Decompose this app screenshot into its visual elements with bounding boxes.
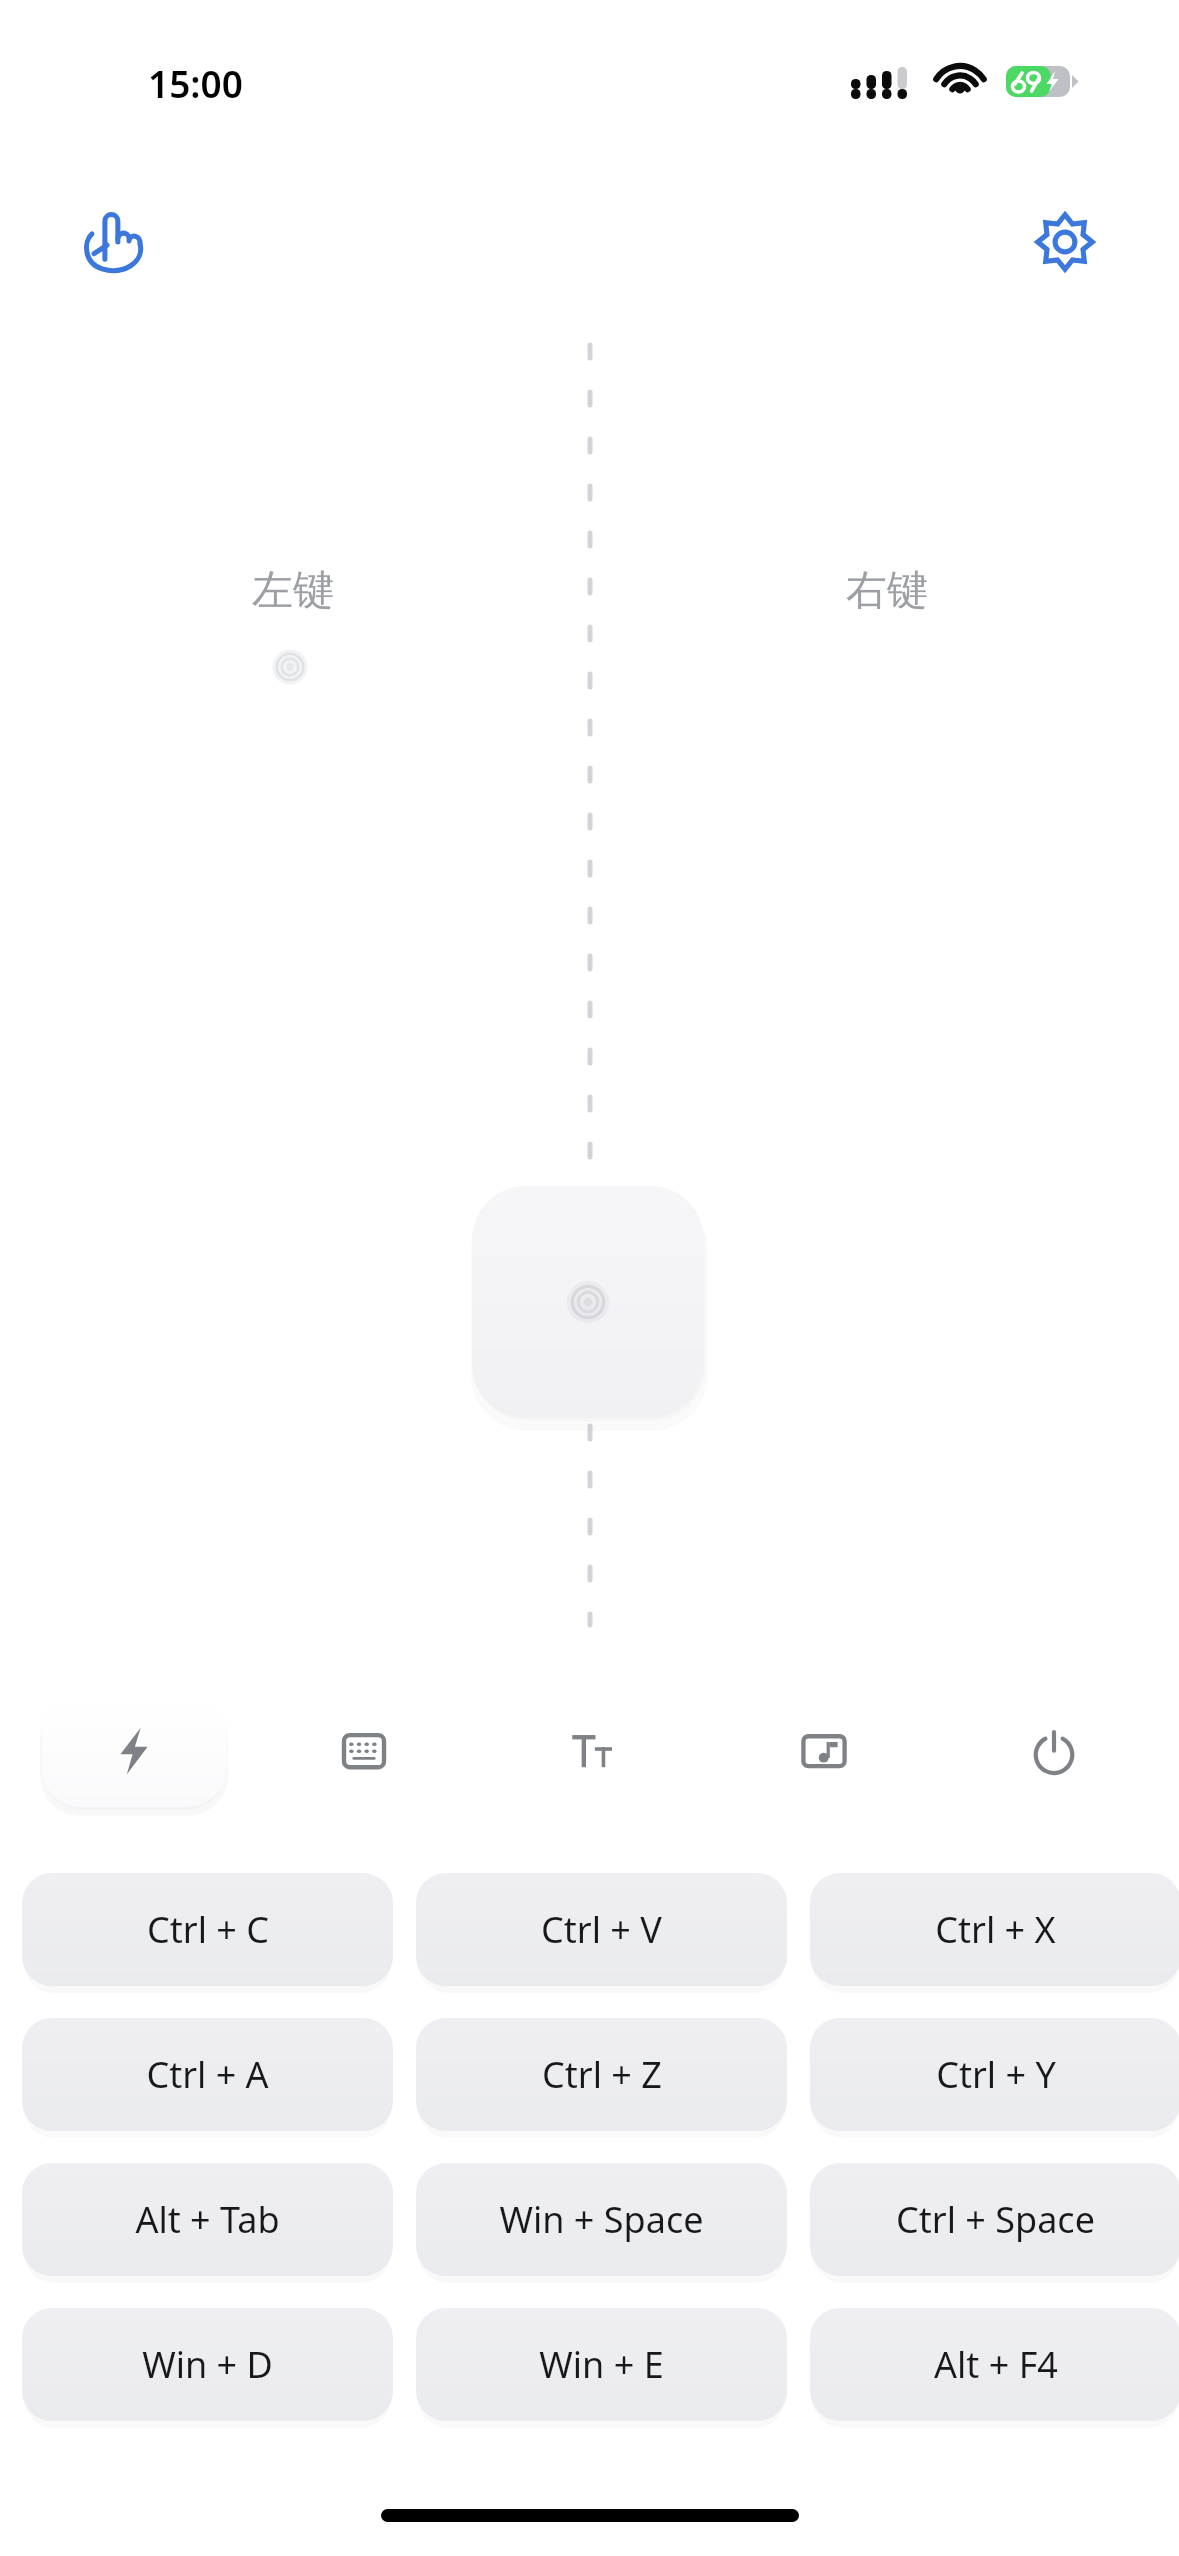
button[interactable] (472, 1186, 704, 1418)
staticText: Ctrl + V (541, 1905, 662, 1954)
button[interactable]: Win + Space (416, 2163, 787, 2276)
staticText: Ctrl + C (147, 1905, 269, 1954)
button[interactable]: Keyboard (265, 1690, 463, 1812)
button[interactable]: Win + D (22, 2308, 393, 2421)
button[interactable]: Alt + F4 (810, 2308, 1179, 2421)
staticText: Ctrl + Z (542, 2050, 662, 2099)
staticText: Ctrl + X (935, 1905, 1056, 1954)
staticText: 右键 (846, 565, 928, 617)
button[interactable]: Ctrl + Z (416, 2018, 787, 2131)
staticText: Win + E (539, 2340, 664, 2389)
staticText: 15:00 (148, 58, 243, 108)
button[interactable]: Settings (1019, 196, 1111, 288)
staticText: Alt + F4 (934, 2340, 1058, 2389)
staticText: Alt + Tab (135, 2195, 280, 2244)
staticText: Ctrl + Space (896, 2195, 1095, 2244)
button[interactable]: Ctrl + Space (810, 2163, 1179, 2276)
button[interactable]: Win + E (416, 2308, 787, 2421)
staticText: 左键 (252, 565, 334, 617)
button[interactable]: Ctrl + A (22, 2018, 393, 2131)
staticText: Win + D (142, 2340, 273, 2389)
button[interactable]: Ctrl + V (416, 1873, 787, 1986)
button[interactable]: Shortcuts (35, 1690, 233, 1812)
button[interactable]: Alt + Tab (22, 2163, 393, 2276)
staticText: Win + Space (499, 2195, 704, 2244)
button[interactable]: 左键 (0, 565, 585, 705)
button[interactable]: 右键 (594, 565, 1179, 705)
staticText: Ctrl + Y (936, 2050, 1056, 2099)
button[interactable]: Text size (495, 1690, 693, 1812)
button[interactable]: Ctrl + C (22, 1873, 393, 1986)
button[interactable]: Ctrl + Y (810, 2018, 1179, 2131)
staticText: Ctrl + A (146, 2050, 269, 2099)
button[interactable]: Power (955, 1690, 1153, 1812)
button[interactable]: Media (725, 1690, 923, 1812)
button[interactable]: Touch mode (68, 196, 160, 288)
button[interactable]: Ctrl + X (810, 1873, 1179, 1986)
